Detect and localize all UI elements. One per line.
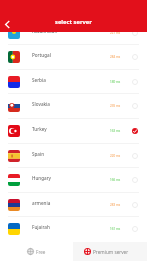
staticText: Turkey (32, 126, 47, 132)
button[interactable]: Turkey (0, 118, 147, 143)
staticText: 227 ms (110, 31, 121, 35)
button[interactable]: Hungary (0, 167, 147, 192)
staticText: 180 ms (110, 80, 121, 84)
staticText: Premium server (93, 249, 129, 255)
staticText: 166 ms (110, 178, 121, 182)
staticText: 161 ms (110, 227, 121, 231)
staticText: 284 ms (110, 55, 121, 59)
button[interactable]: Spain (0, 143, 147, 168)
button[interactable]: Slovakia (0, 93, 147, 118)
staticText: armenia (32, 200, 51, 206)
staticText: 220 ms (110, 154, 121, 158)
staticText: 283 ms (110, 203, 121, 207)
staticText: Spain (32, 151, 45, 157)
staticText: 235 ms (110, 104, 121, 108)
button[interactable]: Free (0, 242, 73, 261)
staticText: Fujairah (32, 224, 50, 230)
staticText: select server (55, 18, 92, 26)
button[interactable]: Premium server (73, 242, 147, 261)
staticText: Portugal (32, 52, 51, 58)
button[interactable]: armenia (0, 192, 147, 217)
button[interactable]: Fujairah (0, 216, 147, 241)
button[interactable]: Back (1, 18, 14, 31)
button[interactable]: Serbia (0, 69, 147, 94)
staticText: Slovakia (32, 101, 50, 107)
staticText: 163 ms (110, 129, 121, 133)
staticText: Serbia (32, 77, 46, 83)
button[interactable]: Portugal (0, 44, 147, 69)
staticText: Hungary (32, 175, 52, 181)
staticText: Free (36, 249, 46, 255)
staticText: Kazakhstan (32, 28, 58, 34)
